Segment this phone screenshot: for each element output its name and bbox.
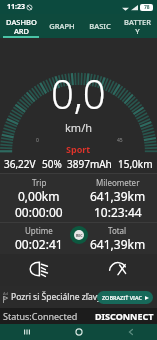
staticText: REC bbox=[76, 233, 83, 238]
staticText: km/h bbox=[65, 120, 93, 135]
button[interactable]: GRAPH bbox=[42, 14, 81, 38]
staticText: 78 bbox=[144, 4, 150, 11]
button[interactable]: Headlight bbox=[0, 254, 78, 284]
staticText: Trip bbox=[32, 177, 47, 188]
staticText: 00:00:00 bbox=[15, 204, 63, 220]
button[interactable]: BASIC bbox=[81, 14, 118, 38]
staticText: ZOBRAZIŤ VIAC bbox=[102, 294, 143, 301]
button[interactable]: Ad bbox=[0, 286, 157, 308]
button[interactable]: Speed limit bbox=[78, 254, 157, 284]
staticText: 641,39km bbox=[90, 188, 146, 204]
staticText: Status:Connected bbox=[3, 310, 78, 322]
staticText: Total bbox=[108, 225, 127, 236]
staticText: Sport bbox=[66, 143, 91, 155]
staticText: 45 bbox=[117, 137, 123, 144]
staticText: Ad bbox=[3, 291, 9, 296]
staticText: 50% bbox=[42, 157, 62, 171]
staticText: DISCONNECT bbox=[95, 310, 154, 322]
button[interactable]: Record bbox=[70, 226, 88, 244]
staticText: 641,39km bbox=[90, 236, 146, 252]
staticText: Uptime bbox=[25, 225, 53, 236]
button[interactable]: ZOBRAZIŤ VIAC bbox=[97, 291, 153, 304]
staticText: 3897mAh bbox=[67, 157, 112, 171]
staticText: 10:23:44 bbox=[94, 204, 142, 220]
staticText: 11:23 bbox=[7, 2, 25, 12]
staticText: 15,0km bbox=[118, 157, 153, 171]
staticText: BATTER Y bbox=[124, 17, 151, 36]
staticText: 0 bbox=[36, 137, 39, 144]
staticText: DASHBO ARD bbox=[6, 17, 37, 36]
button[interactable]: Recent apps bbox=[0, 324, 53, 340]
button[interactable]: Home bbox=[53, 324, 105, 340]
staticText: GRAPH bbox=[49, 21, 75, 31]
button[interactable]: Back bbox=[105, 324, 157, 340]
staticText: 36,22V bbox=[4, 157, 36, 171]
staticText: Mileometer bbox=[96, 177, 140, 188]
button[interactable]: DISCONNECT bbox=[91, 308, 157, 324]
staticText: 0,00km bbox=[18, 188, 60, 204]
staticText: BASIC bbox=[89, 21, 111, 31]
staticText: Pozri si Špeciálne zľavy bbox=[11, 291, 102, 303]
staticText: 00:02:41 bbox=[15, 236, 63, 252]
staticText: 0,0 bbox=[51, 66, 106, 120]
button[interactable]: DASHBO ARD bbox=[0, 14, 42, 38]
button[interactable]: BATTER Y bbox=[118, 14, 157, 38]
